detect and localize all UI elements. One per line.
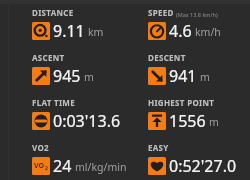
staticText: 9.11	[53, 20, 85, 42]
other: Easy zone time	[148, 157, 166, 175]
staticText: HIGHEST POINT	[148, 97, 215, 108]
staticText: ASCENT	[32, 52, 65, 63]
staticText: km/h	[195, 25, 221, 39]
other: Highest point	[148, 112, 166, 130]
staticText: 1556	[169, 110, 206, 132]
button[interactable]: EASY	[148, 142, 237, 177]
button[interactable]: DESCENT	[148, 52, 210, 87]
staticText: DESCENT	[148, 52, 186, 63]
button[interactable]: HIGHEST POINT	[148, 97, 219, 132]
staticText: 24	[53, 155, 72, 177]
staticText: km	[88, 25, 104, 39]
other: VO2	[32, 157, 50, 175]
staticText: m	[209, 115, 219, 129]
button[interactable]: SPEED	[148, 7, 221, 42]
staticText: FLAT TIME	[32, 97, 75, 108]
other: Descent	[148, 67, 166, 85]
staticText: (Max 13.8 km/h)	[176, 11, 218, 18]
button[interactable]: ASCENT	[32, 52, 94, 87]
staticText: EASY	[148, 142, 169, 153]
staticText: SPEED	[148, 7, 174, 18]
button[interactable]: DISTANCE	[32, 7, 104, 42]
staticText: 4.6	[169, 20, 192, 42]
staticText: 945	[53, 65, 81, 87]
other: Flat time	[32, 112, 50, 130]
staticText: m	[200, 70, 210, 84]
staticText: VO2	[32, 142, 49, 153]
button[interactable]: FLAT TIME	[32, 97, 121, 132]
staticText: VO	[34, 161, 45, 171]
staticText: ml/kg/min	[75, 160, 127, 174]
staticText: 2	[45, 165, 48, 172]
staticText: m	[84, 70, 94, 84]
button[interactable]: VO2	[32, 142, 127, 177]
staticText: 0:03'13.6	[53, 110, 121, 132]
staticText: 0:52'27.0	[169, 155, 237, 177]
staticText: 941	[169, 65, 197, 87]
other: Distance	[32, 22, 50, 40]
other: Ascent	[32, 67, 50, 85]
other: Speed	[148, 22, 166, 40]
staticText: DISTANCE	[32, 7, 74, 18]
